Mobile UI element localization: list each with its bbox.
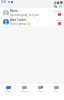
button[interactable]: Search <box>53 4 57 8</box>
button[interactable]: Calls <box>32 84 48 93</box>
button[interactable]: Mom <box>0 8 64 17</box>
button[interactable]: You <box>48 84 64 93</box>
staticText: Chats <box>5 90 11 93</box>
button[interactable]: Alex Carter <box>0 17 64 26</box>
staticText: Status <box>21 90 28 93</box>
staticText: 10:24 <box>54 9 61 12</box>
staticText: 9:02 <box>56 18 61 21</box>
staticText: Mom <box>10 9 18 13</box>
button[interactable]: Chats <box>0 84 16 93</box>
staticText: 9:41 <box>1 0 7 4</box>
button[interactable]: Account <box>58 4 62 8</box>
staticText: Alex Carter <box>10 18 27 22</box>
staticText: Sounds good, see you <box>10 13 39 17</box>
staticText: Sent a photo <box>10 22 27 26</box>
staticText: You <box>54 90 58 93</box>
staticText: Calls <box>38 90 43 93</box>
button[interactable]: Status <box>16 84 32 93</box>
